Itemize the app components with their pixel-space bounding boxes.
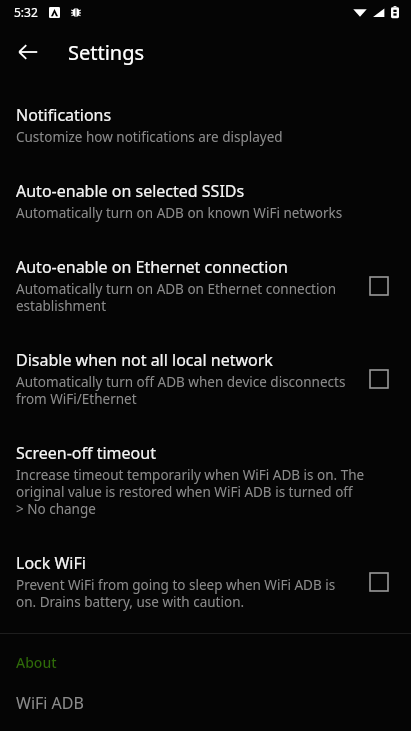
staticText: Automatically turn on ADB on known WiFi … [16, 204, 343, 222]
staticText: Customize how notifications are displaye… [16, 128, 283, 146]
button[interactable]: Auto-enable on selected SSIDs [0, 160, 411, 236]
staticText: Automatically turn on ADB on Ethernet co… [16, 280, 347, 315]
button[interactable]: Lock WiFi [0, 532, 411, 625]
button[interactable]: Disable when not all local network [361, 361, 397, 397]
staticText: Settings [68, 39, 145, 66]
staticText: Auto-enable on Ethernet connection [16, 256, 288, 278]
staticText: About [16, 653, 57, 672]
button[interactable]: Auto-enable on Ethernet connection [0, 236, 411, 329]
button[interactable]: Back [8, 32, 48, 72]
button[interactable]: Auto-enable on Ethernet connection [361, 268, 397, 304]
button[interactable]: WiFi ADB [0, 674, 411, 731]
staticText: Disable when not all local network [16, 349, 273, 371]
staticText: Increase timeout temporarily when WiFi A… [16, 466, 373, 518]
staticText: Screen-off timeout [16, 442, 156, 464]
staticText: Notifications [16, 104, 112, 126]
staticText: Auto-enable on selected SSIDs [16, 180, 245, 202]
staticText: WiFi ADB [16, 692, 84, 714]
staticText: Prevent WiFi from going to sleep when Wi… [16, 576, 347, 611]
button[interactable]: Disable when not all local network [0, 329, 411, 422]
button[interactable]: Lock WiFi [361, 564, 397, 600]
button[interactable]: Screen-off timeout [0, 422, 411, 532]
staticText: 5:32 [14, 4, 38, 20]
staticText: Lock WiFi [16, 552, 86, 574]
button[interactable]: Notifications [0, 92, 411, 160]
staticText: Automatically turn off ADB when device d… [16, 373, 347, 408]
